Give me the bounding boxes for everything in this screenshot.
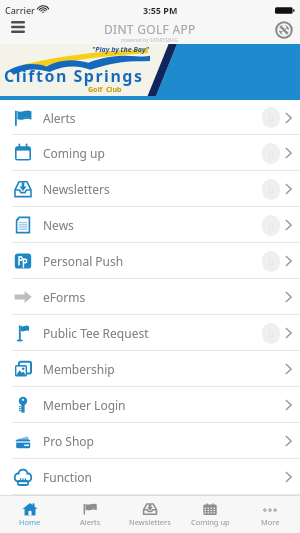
staticText: Clifton Springs [4, 65, 144, 87]
staticText: Coming up [191, 517, 230, 527]
button[interactable]: Membership [0, 351, 300, 387]
staticText: News [43, 217, 74, 233]
button[interactable]: Function [0, 459, 300, 495]
button[interactable]: Pro Shop [0, 423, 300, 459]
staticText: Function [43, 469, 92, 485]
button[interactable]: News [0, 207, 300, 243]
button[interactable]: Public Tee Request [0, 315, 300, 351]
staticText: Alerts [80, 517, 101, 527]
staticText: Newsletters [43, 181, 110, 197]
staticText: Member Login [43, 397, 126, 413]
staticText: DINT GOLF APP [104, 21, 196, 37]
staticText: Public Tee Request [43, 325, 149, 341]
button[interactable]: Coming up [180, 496, 240, 533]
staticText: Pro Shop [43, 433, 95, 449]
staticText: eForms [43, 289, 86, 305]
button[interactable]: Personal Push [0, 243, 300, 279]
button[interactable]: Coming up [0, 135, 300, 171]
button[interactable]: Alerts [60, 496, 120, 533]
button[interactable]: Alerts [0, 100, 300, 135]
button[interactable]: Newsletters [0, 171, 300, 207]
staticText: Coming up [43, 145, 105, 161]
button[interactable]: Member Login [0, 387, 300, 423]
staticText: Golf Club [88, 85, 122, 95]
button[interactable]: Home [0, 496, 60, 533]
staticText: "Play by the Bay" [92, 45, 149, 55]
button[interactable]: Newsletters [120, 496, 180, 533]
staticText: Alerts [43, 110, 76, 126]
button[interactable]: Menu [0, 20, 36, 44]
staticText: Newsletters [129, 517, 171, 527]
staticText: Home [19, 517, 41, 527]
button[interactable]: Refresh [268, 20, 300, 44]
button[interactable]: eForms [0, 279, 300, 315]
staticText: powered by SPORTSBAG [121, 37, 179, 44]
staticText: 3:55 PM [143, 4, 178, 16]
staticText: Membership [43, 361, 115, 377]
staticText: Personal Push [43, 253, 124, 269]
staticText: Carrier [5, 4, 35, 16]
button[interactable]: More [240, 496, 300, 533]
staticText: More [261, 517, 280, 527]
